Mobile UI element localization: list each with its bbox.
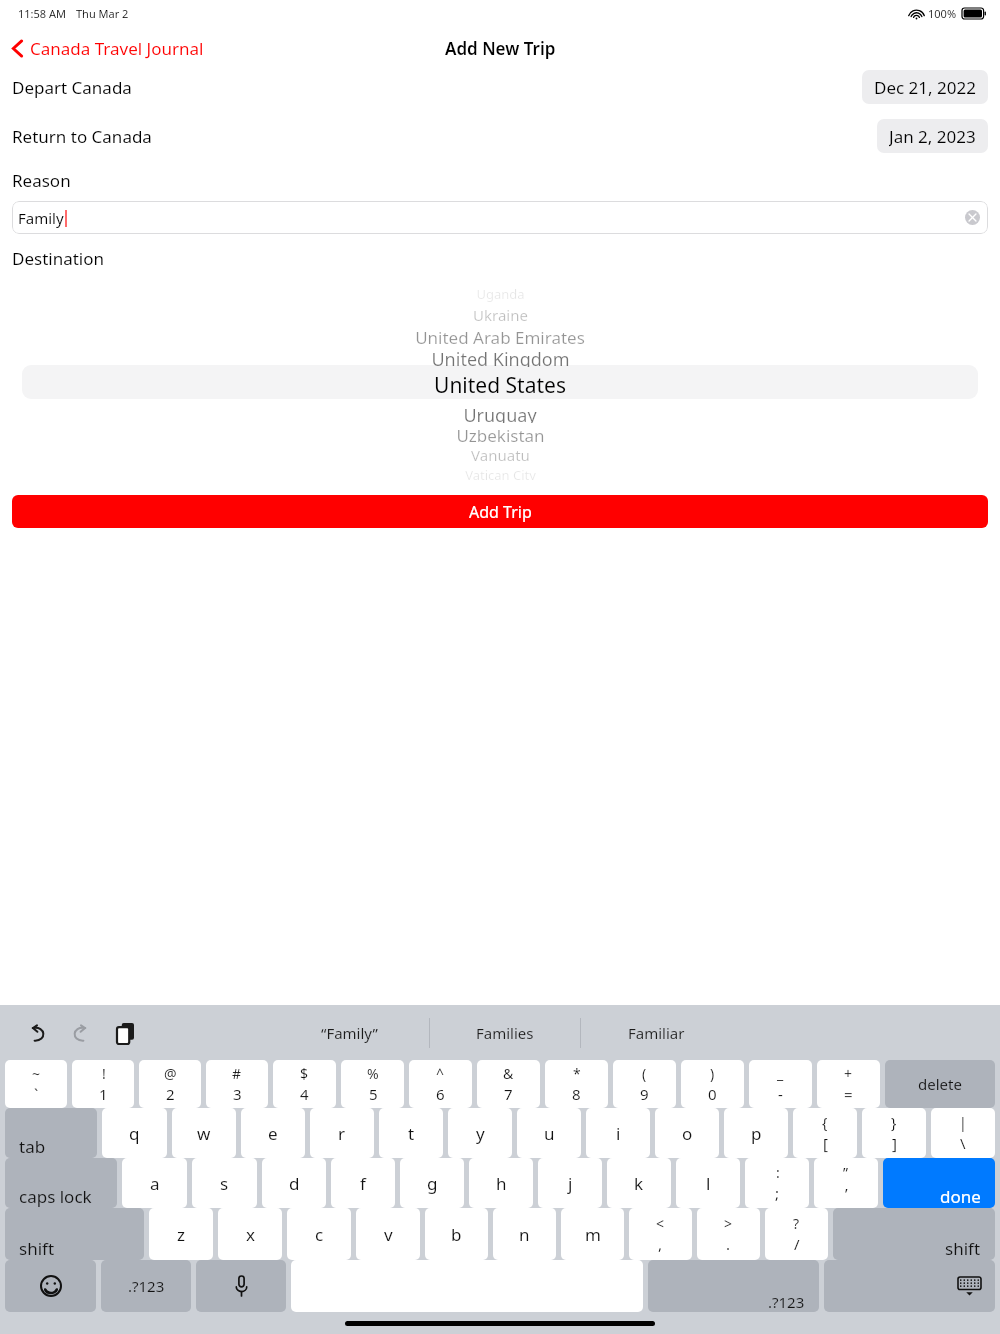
- staticText: United Kingdom: [431, 347, 570, 367]
- button[interactable]: shift: [5, 1208, 144, 1260]
- button[interactable]: shift: [833, 1208, 995, 1260]
- button[interactable]: !: [72, 1060, 134, 1108]
- staticText: g: [427, 1172, 438, 1195]
- button[interactable]: h: [469, 1158, 533, 1208]
- button[interactable]: b: [425, 1208, 488, 1260]
- button[interactable]: Familiar: [581, 1005, 731, 1060]
- button[interactable]: i: [586, 1108, 650, 1158]
- button[interactable]: p: [724, 1108, 788, 1158]
- button[interactable]: x: [218, 1208, 282, 1260]
- button[interactable]: w: [172, 1108, 236, 1158]
- button[interactable]: tab: [5, 1108, 97, 1158]
- staticText: “Family”: [321, 1023, 378, 1043]
- button[interactable]: d: [262, 1158, 326, 1208]
- button[interactable]: Undo: [22, 1018, 52, 1048]
- button[interactable]: Dictate: [196, 1260, 286, 1312]
- staticText: w: [197, 1122, 211, 1145]
- button[interactable]: Uganda: [0, 284, 1000, 480]
- button[interactable]: Family: [12, 201, 988, 234]
- staticText: c: [315, 1223, 324, 1246]
- button[interactable]: @: [139, 1060, 201, 1108]
- button[interactable]: _: [749, 1060, 812, 1108]
- staticText: United Arab Emirates: [415, 326, 585, 346]
- button[interactable]: $: [273, 1060, 336, 1108]
- button[interactable]: g: [400, 1158, 464, 1208]
- staticText: .?123: [768, 1292, 805, 1312]
- button[interactable]: f: [331, 1158, 395, 1208]
- button[interactable]: q: [102, 1108, 167, 1158]
- button[interactable]: .?123: [101, 1260, 191, 1312]
- button[interactable]: v: [356, 1208, 420, 1260]
- staticText: e: [268, 1122, 278, 1145]
- button[interactable]: u: [517, 1108, 581, 1158]
- button[interactable]: z: [149, 1208, 213, 1260]
- staticText: $: [300, 1064, 309, 1083]
- button[interactable]: {: [793, 1108, 857, 1158]
- staticText: 3: [233, 1084, 242, 1104]
- staticText: +: [844, 1064, 853, 1083]
- staticText: /: [794, 1234, 800, 1254]
- staticText: 7: [504, 1084, 513, 1104]
- staticText: Vatican City: [465, 466, 536, 480]
- staticText: ”: [843, 1163, 849, 1182]
- button[interactable]: y: [448, 1108, 512, 1158]
- button[interactable]: Add Trip: [12, 495, 988, 528]
- button[interactable]: Emoji: [5, 1260, 96, 1312]
- staticText: 11:58 AM: [18, 6, 66, 21]
- button[interactable]: o: [655, 1108, 719, 1158]
- button[interactable]: %: [341, 1060, 404, 1108]
- button[interactable]: k: [607, 1158, 671, 1208]
- button[interactable]: Redo: [66, 1018, 96, 1048]
- button[interactable]: Paste: [110, 1018, 140, 1048]
- button[interactable]: done: [883, 1158, 995, 1208]
- staticText: ’: [845, 1183, 848, 1203]
- button[interactable]: ^: [409, 1060, 472, 1108]
- button[interactable]: c: [287, 1208, 351, 1260]
- staticText: ;: [775, 1183, 780, 1203]
- button[interactable]: a: [122, 1158, 187, 1208]
- button[interactable]: ): [681, 1060, 744, 1108]
- button[interactable]: Dec 21, 2022: [862, 70, 988, 104]
- staticText: .: [726, 1234, 731, 1254]
- button[interactable]: <: [629, 1208, 692, 1260]
- button[interactable]: +: [817, 1060, 880, 1108]
- button[interactable]: Clear text: [965, 210, 980, 225]
- button[interactable]: }: [862, 1108, 926, 1158]
- button[interactable]: *: [545, 1060, 608, 1108]
- button[interactable]: s: [192, 1158, 257, 1208]
- staticText: tab: [19, 1135, 46, 1158]
- button[interactable]: &: [477, 1060, 540, 1108]
- button[interactable]: j: [538, 1158, 602, 1208]
- staticText: #: [232, 1064, 242, 1083]
- button[interactable]: t: [379, 1108, 443, 1158]
- staticText: %: [367, 1064, 379, 1083]
- button[interactable]: m: [561, 1208, 624, 1260]
- button[interactable]: ”: [814, 1158, 878, 1208]
- button[interactable]: Jan 2, 2023: [877, 119, 988, 153]
- staticText: s: [220, 1172, 229, 1195]
- button[interactable]: Families: [430, 1005, 580, 1060]
- button[interactable]: e: [241, 1108, 305, 1158]
- button[interactable]: delete: [885, 1060, 995, 1108]
- staticText: 2: [166, 1084, 175, 1104]
- button[interactable]: caps lock: [5, 1158, 117, 1208]
- button[interactable]: Canada Travel Journal: [0, 33, 212, 64]
- button[interactable]: ~: [5, 1060, 67, 1108]
- button[interactable]: n: [493, 1208, 556, 1260]
- button[interactable]: l: [676, 1158, 740, 1208]
- button[interactable]: r: [310, 1108, 374, 1158]
- staticText: Families: [476, 1023, 534, 1043]
- staticText: Uzbekistan: [456, 424, 545, 444]
- staticText: Jan 2, 2023: [889, 125, 976, 147]
- button[interactable]: #: [206, 1060, 268, 1108]
- button[interactable]: |: [931, 1108, 995, 1158]
- button[interactable]: >: [697, 1208, 760, 1260]
- button[interactable]: ?: [765, 1208, 828, 1260]
- button[interactable]: .?123: [648, 1260, 819, 1312]
- staticText: d: [289, 1172, 300, 1195]
- button[interactable]: (: [613, 1060, 676, 1108]
- button[interactable]: Hide keyboard: [824, 1260, 995, 1312]
- button[interactable]: “Family”: [269, 1005, 429, 1060]
- button[interactable]: :: [745, 1158, 809, 1208]
